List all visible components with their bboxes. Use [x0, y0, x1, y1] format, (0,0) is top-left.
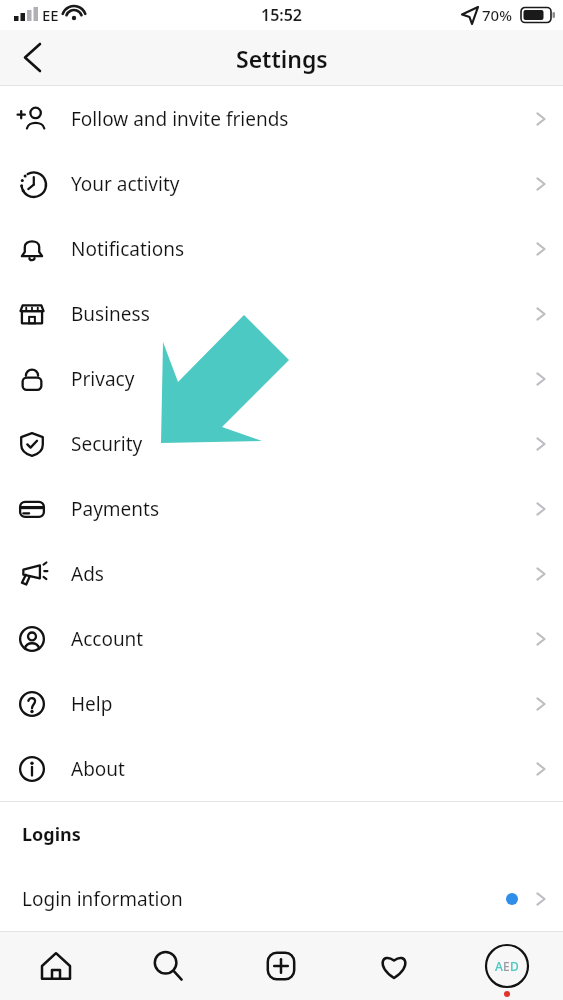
staticText: A	[495, 958, 503, 974]
staticText: Payments	[71, 496, 518, 522]
staticText: D	[510, 958, 519, 974]
button[interactable]: Payments	[0, 476, 563, 541]
button[interactable]: Home	[0, 932, 112, 1000]
button[interactable]: Login information	[0, 867, 563, 931]
staticText: Help	[71, 691, 518, 717]
button[interactable]: Notifications	[0, 216, 563, 281]
button[interactable]: Privacy	[0, 346, 563, 411]
staticText: EE	[42, 5, 59, 25]
staticText: About	[71, 756, 518, 782]
staticText: 15:52	[261, 4, 303, 26]
button[interactable]: Account	[0, 606, 563, 671]
staticText: Business	[71, 301, 518, 327]
button[interactable]: Profile	[450, 932, 563, 1000]
button[interactable]: Business	[0, 281, 563, 346]
staticText: Your activity	[71, 171, 518, 197]
button[interactable]: Activity	[337, 932, 450, 1000]
button[interactable]: Search	[112, 932, 224, 1000]
staticText: Settings	[236, 43, 328, 74]
staticText: Security	[71, 431, 518, 457]
staticText: Follow and invite friends	[71, 106, 518, 132]
button[interactable]: Security	[0, 411, 563, 476]
staticText: Privacy	[71, 366, 518, 392]
button[interactable]: Help	[0, 671, 563, 736]
staticText: 70%	[482, 5, 512, 25]
button[interactable]: Back	[0, 30, 60, 86]
staticText: Login information	[22, 886, 506, 912]
button[interactable]: New post	[224, 932, 337, 1000]
staticText: E	[503, 958, 510, 974]
button[interactable]: Your activity	[0, 151, 563, 216]
button[interactable]: Ads	[0, 541, 563, 606]
button[interactable]: About	[0, 736, 563, 801]
button[interactable]: Follow and invite friends	[0, 86, 563, 151]
staticText: Account	[71, 626, 518, 652]
staticText: Ads	[71, 561, 518, 587]
staticText: Logins	[22, 822, 81, 847]
staticText: Notifications	[71, 236, 518, 262]
